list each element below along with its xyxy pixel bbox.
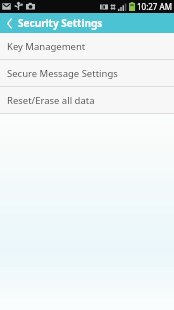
button[interactable]: Secure Message Settings xyxy=(0,60,174,86)
staticText: Secure Message Settings xyxy=(7,67,118,80)
staticText: 10:27 AM xyxy=(137,1,172,12)
button[interactable]: Back xyxy=(0,13,18,33)
button[interactable]: Key Management xyxy=(0,33,174,59)
staticText: Security Settings xyxy=(18,16,103,30)
staticText: Key Management xyxy=(7,40,86,53)
button[interactable]: Reset/Erase all data xyxy=(0,87,174,113)
staticText: Reset/Erase all data xyxy=(7,94,95,107)
